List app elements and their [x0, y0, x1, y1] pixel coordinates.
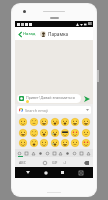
button[interactable]: Back: [23, 168, 32, 177]
button[interactable]: Emoji category: [17, 151, 22, 156]
button[interactable]: Emoji: [18, 117, 27, 126]
button[interactable]: Emoji category: [31, 151, 36, 156]
button[interactable]: Emoji category: [72, 151, 77, 156]
button[interactable]: Emoji: [70, 138, 79, 147]
staticText: Назад: [23, 31, 36, 37]
staticText: :-): [63, 160, 67, 165]
button[interactable]: Emoji: [81, 138, 90, 147]
button[interactable]: Emoji: [70, 128, 79, 137]
button[interactable]: Emoji: [29, 128, 38, 137]
button[interactable]: Emoji: [50, 128, 59, 137]
button[interactable]: Backspace: [83, 159, 90, 166]
button[interactable]: Emoji: [60, 117, 69, 126]
button[interactable]: Emoji: [18, 138, 27, 147]
button[interactable]: Emoji: [81, 117, 90, 126]
button[interactable]: GIF: [51, 159, 59, 166]
staticText: ABC: [19, 160, 26, 165]
button[interactable]: Emoji: [50, 138, 59, 147]
button[interactable]: Emoji: [60, 138, 69, 147]
button[interactable]: Recent emoji: [41, 159, 48, 166]
button[interactable]: Home: [41, 168, 50, 177]
button[interactable]: Emoji category: [52, 151, 57, 156]
staticText: Привет! Давай знакомиться: [26, 95, 75, 100]
button[interactable]: :-): [62, 159, 68, 166]
button[interactable]: Search emoji: [17, 106, 91, 114]
button[interactable]: Emoji: [29, 138, 38, 147]
button[interactable]: Emoji: [39, 128, 48, 137]
button[interactable]: Emoji category: [65, 151, 70, 156]
button[interactable]: Emoji category: [45, 151, 50, 156]
button[interactable]: Emoji category: [24, 151, 29, 156]
button[interactable]: Emoji category: [38, 151, 43, 156]
button[interactable]: Send: [83, 94, 91, 103]
button[interactable]: Recent apps: [58, 168, 67, 177]
staticText: Парамка: [48, 31, 69, 37]
button[interactable]: Emoji: [29, 117, 38, 126]
button[interactable]: Screenshot: [76, 168, 85, 177]
button[interactable]: Emoji keyboard: [17, 94, 81, 103]
button[interactable]: Emoji category: [58, 151, 63, 156]
button[interactable]: Emoji category: [79, 151, 84, 156]
staticText: Search emoji: [25, 108, 48, 113]
button[interactable]: Emoji category: [86, 151, 91, 156]
button[interactable]: Emoji: [60, 128, 69, 137]
staticText: 83: [88, 22, 92, 26]
staticText: GIF: [52, 160, 58, 165]
button[interactable]: Emoji: [81, 128, 90, 137]
other: Emoji keyboard: [19, 96, 24, 101]
button[interactable]: Emoji: [39, 117, 48, 126]
button[interactable]: Emoji: [18, 128, 27, 137]
button[interactable]: Emoji: [50, 117, 59, 126]
button[interactable]: ABC: [18, 159, 27, 166]
button[interactable]: Emoji: [39, 138, 48, 147]
button[interactable]: Emoji: [70, 117, 79, 126]
button[interactable]: Назад: [18, 30, 37, 38]
